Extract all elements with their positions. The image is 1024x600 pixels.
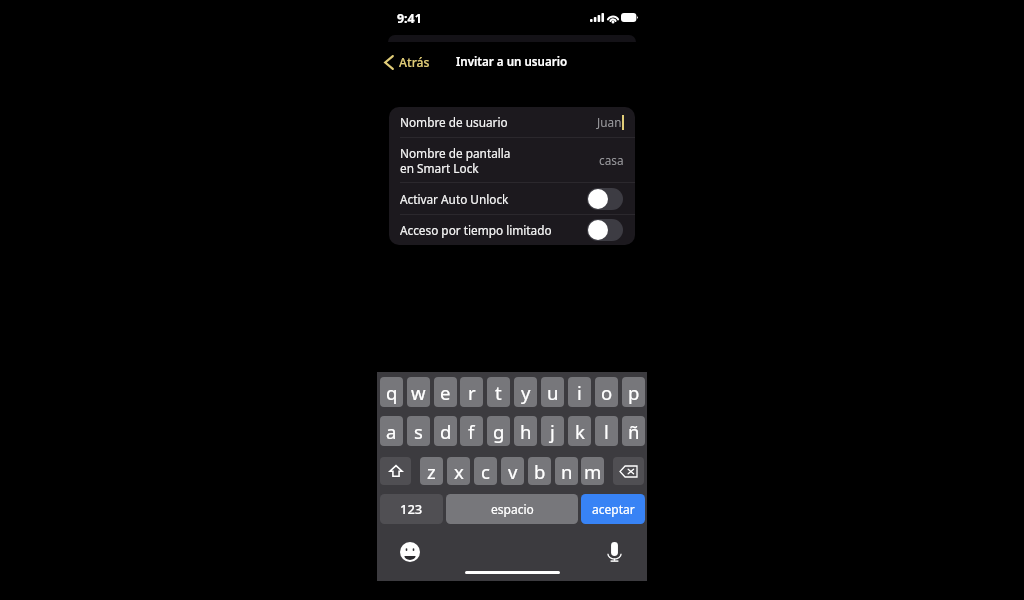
button[interactable]: y	[514, 377, 537, 407]
button[interactable]: u	[541, 377, 564, 407]
button[interactable]: ñ	[622, 416, 645, 446]
staticText: o	[601, 380, 613, 405]
button[interactable]: q	[380, 377, 403, 407]
staticText: f	[468, 419, 475, 444]
button[interactable]: s	[407, 416, 430, 446]
staticText: j	[550, 419, 555, 444]
staticText: x	[454, 459, 464, 484]
button[interactable]: m	[581, 457, 604, 485]
button[interactable]: k	[568, 416, 591, 446]
button[interactable]: j	[541, 416, 564, 446]
button[interactable]: i	[568, 377, 591, 407]
button[interactable]: aceptar	[581, 494, 645, 524]
staticText: t	[495, 380, 502, 405]
button[interactable]: p	[622, 377, 645, 407]
button[interactable]: Nombre de pantalla en Smart Lock	[389, 138, 635, 182]
staticText: r	[468, 380, 476, 405]
button[interactable]: b	[528, 457, 551, 485]
button[interactable]: r	[460, 377, 483, 407]
button[interactable]: h	[514, 416, 537, 446]
button[interactable]: c	[474, 457, 497, 485]
button[interactable]: Shift	[380, 457, 411, 485]
staticText: e	[440, 380, 451, 405]
button[interactable]: z	[420, 457, 443, 485]
button[interactable]: a	[380, 416, 403, 446]
staticText: a	[386, 419, 397, 444]
staticText: ñ	[628, 419, 640, 444]
button[interactable]: espacio	[446, 494, 578, 524]
staticText: m	[584, 459, 602, 484]
staticText: g	[493, 419, 505, 444]
staticText: aceptar	[592, 501, 635, 517]
staticText: z	[427, 459, 436, 484]
button[interactable]: g	[487, 416, 510, 446]
staticText: w	[411, 380, 426, 405]
staticText: h	[520, 419, 532, 444]
staticText: d	[440, 419, 452, 444]
button[interactable]: Activar Auto Unlock	[389, 183, 635, 214]
staticText: u	[547, 380, 559, 405]
staticText: l	[604, 419, 609, 444]
button[interactable]: Activar Auto Unlock, desactivado	[587, 188, 623, 210]
button[interactable]: t	[487, 377, 510, 407]
staticText: casa	[599, 152, 624, 168]
button[interactable]: Backspace	[613, 457, 644, 485]
button[interactable]: o	[595, 377, 618, 407]
staticText: Juan	[597, 114, 622, 130]
staticText: v	[508, 459, 518, 484]
staticText: espacio	[491, 501, 534, 517]
staticText: n	[561, 459, 573, 484]
button[interactable]: 123	[380, 494, 443, 524]
staticText: Nombre de usuario	[400, 114, 508, 130]
button[interactable]: Acceso por tiempo limitado	[389, 215, 635, 245]
staticText: s	[414, 419, 423, 444]
staticText: b	[534, 459, 546, 484]
button[interactable]: w	[407, 377, 430, 407]
staticText: Activar Auto Unlock	[400, 191, 509, 207]
staticText: 123	[400, 500, 423, 518]
staticText: 9:41	[397, 10, 422, 27]
staticText: p	[628, 380, 640, 405]
button[interactable]: l	[595, 416, 618, 446]
button[interactable]: v	[501, 457, 524, 485]
staticText: i	[577, 380, 582, 405]
button[interactable]: d	[434, 416, 457, 446]
staticText: Atrás	[399, 54, 430, 71]
button[interactable]: Atrás	[377, 51, 438, 74]
staticText: Invitar a un usuario	[456, 54, 568, 70]
button[interactable]: e	[434, 377, 457, 407]
button[interactable]: Nombre de usuario	[389, 107, 635, 137]
button[interactable]: n	[555, 457, 578, 485]
staticText: y	[521, 380, 531, 405]
button[interactable]: x	[447, 457, 470, 485]
button[interactable]: Acceso por tiempo limitado, desactivado	[587, 219, 623, 241]
button[interactable]: f	[460, 416, 483, 446]
staticText: Acceso por tiempo limitado	[400, 222, 552, 238]
staticText: k	[575, 419, 585, 444]
staticText: c	[481, 459, 490, 484]
staticText: Nombre de pantalla en Smart Lock	[400, 145, 511, 176]
button[interactable]: Emoji	[399, 541, 421, 563]
staticText: q	[386, 380, 398, 405]
button[interactable]: Dictation	[603, 541, 625, 563]
